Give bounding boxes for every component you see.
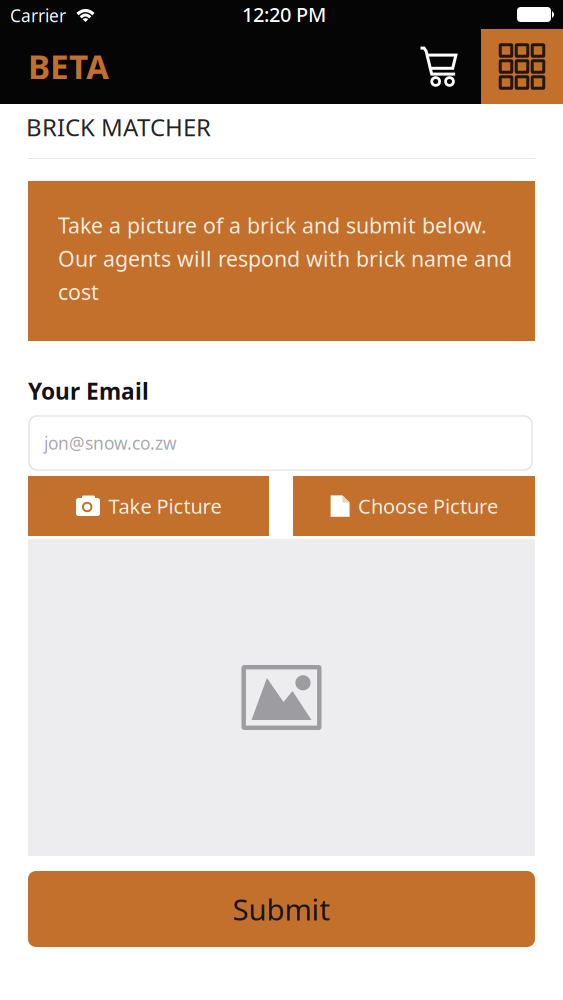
staticText: BRICK MATCHER	[26, 111, 211, 143]
button[interactable]: Submit	[28, 871, 535, 947]
staticText: Choose Picture	[358, 493, 498, 519]
staticText: Take Picture	[108, 493, 221, 519]
staticText: Your Email	[28, 376, 149, 406]
button[interactable]: Take Picture	[28, 476, 269, 536]
staticText: Take a picture of a brick and submit bel…	[58, 211, 512, 306]
staticText: Submit	[232, 889, 330, 928]
staticText: 12:20 PM	[242, 1, 326, 28]
staticText: jon@snow.co.zw	[44, 431, 177, 454]
button[interactable]: Choose Picture	[293, 476, 535, 536]
button[interactable]: Menu	[481, 29, 563, 104]
staticText: Carrier	[10, 4, 66, 27]
staticText: BETA	[28, 44, 109, 89]
button[interactable]: Cart	[396, 29, 481, 104]
